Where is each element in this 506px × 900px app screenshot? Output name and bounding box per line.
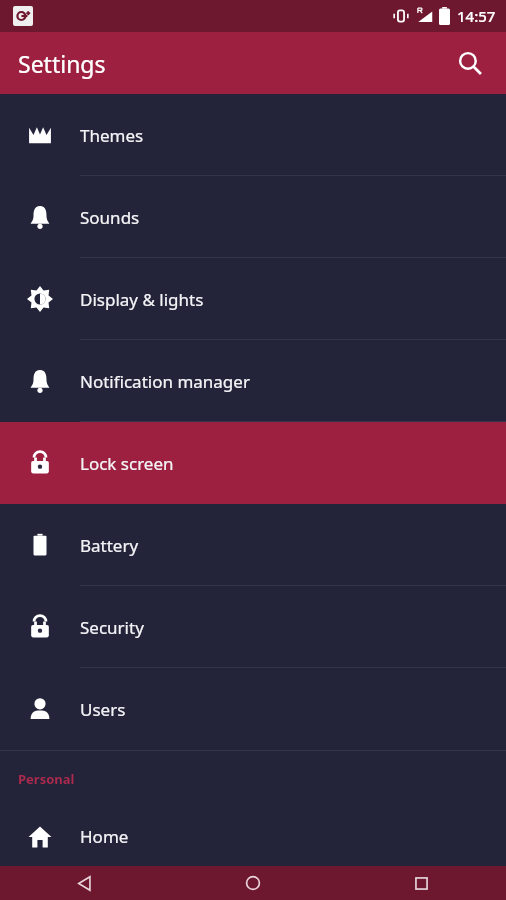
button[interactable]: Sounds — [0, 176, 506, 258]
staticText: Sounds — [80, 206, 140, 229]
button[interactable]: Recent apps — [337, 866, 506, 900]
staticText: Battery — [80, 534, 139, 557]
button[interactable]: Themes — [0, 94, 506, 176]
button[interactable]: Notification manager — [0, 340, 506, 422]
button[interactable]: Security — [0, 586, 506, 668]
staticText: Lock screen — [80, 452, 174, 475]
button[interactable]: Lock screen — [0, 422, 506, 504]
staticText: Notification manager — [80, 370, 250, 393]
staticText: Settings — [18, 48, 106, 79]
staticText: Security — [80, 616, 144, 639]
staticText: Users — [80, 698, 126, 721]
staticText: 14:57 — [457, 6, 496, 26]
staticText: Themes — [80, 124, 144, 147]
staticText: Home — [80, 825, 129, 848]
button[interactable]: Home — [168, 866, 337, 900]
button[interactable]: Back — [0, 866, 168, 900]
button[interactable]: Search — [446, 39, 494, 87]
staticText: Display & lights — [80, 288, 204, 311]
button[interactable]: Battery — [0, 504, 506, 586]
button[interactable]: Home — [0, 807, 506, 866]
button[interactable]: Users — [0, 668, 506, 750]
button[interactable]: Display & lights — [0, 258, 506, 340]
staticText: Personal — [18, 770, 75, 788]
